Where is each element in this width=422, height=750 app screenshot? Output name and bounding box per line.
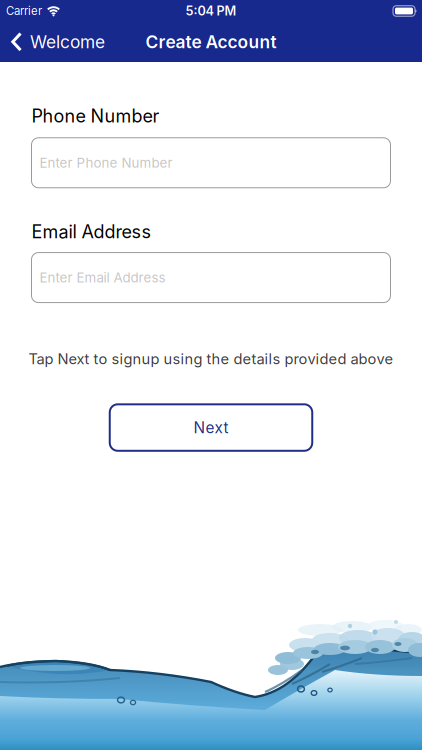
- staticText: Enter Email Address: [39, 269, 165, 286]
- button[interactable]: Next: [110, 404, 312, 451]
- staticText: Email Address: [31, 221, 151, 243]
- staticText: Create Account: [145, 31, 276, 52]
- staticText: Welcome: [30, 31, 105, 52]
- staticText: 5:04 PM: [185, 3, 236, 19]
- button[interactable]: Enter Email Address: [31, 253, 390, 303]
- staticText: Carrier: [6, 4, 42, 18]
- button[interactable]: Enter Phone Number: [31, 138, 390, 188]
- staticText: Phone Number: [31, 105, 159, 127]
- staticText: Next: [193, 418, 228, 437]
- staticText: Enter Phone Number: [39, 155, 172, 171]
- staticText: Tap Next to signup using the details pro…: [28, 350, 393, 368]
- button[interactable]: Welcome: [11, 31, 105, 52]
